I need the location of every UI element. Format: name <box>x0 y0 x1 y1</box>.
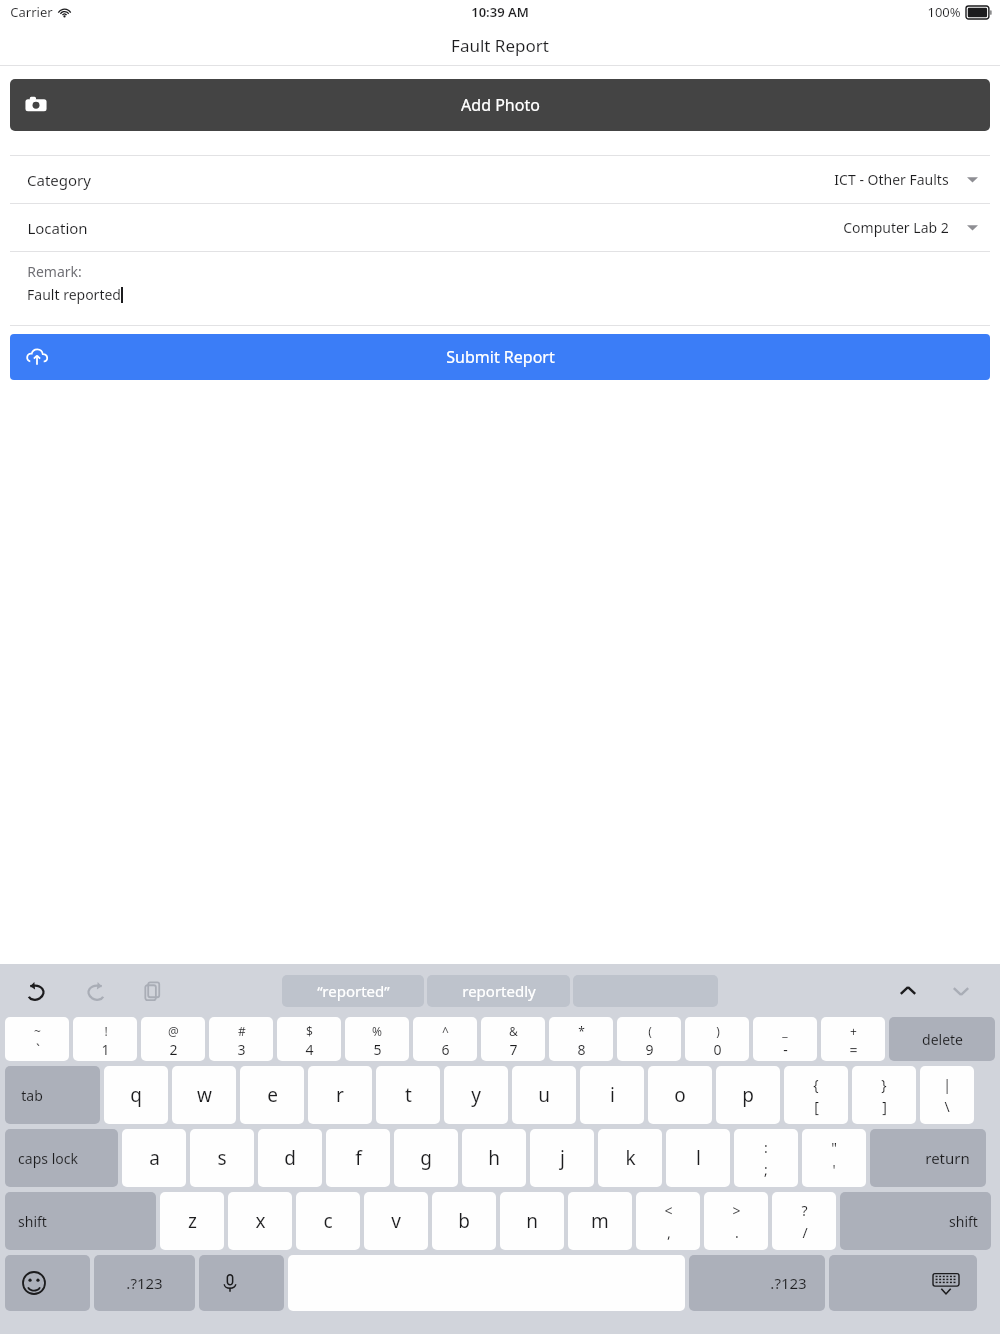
button[interactable]: delete <box>889 1017 995 1061</box>
button[interactable]: } <box>852 1066 916 1124</box>
button[interactable]: ^ <box>413 1017 477 1061</box>
button[interactable]: q <box>104 1066 168 1124</box>
staticText: 10:39 AM <box>471 3 529 21</box>
button[interactable]: .?123 <box>689 1255 825 1311</box>
staticText: 6 <box>441 1040 450 1059</box>
staticText: ? <box>801 1201 808 1220</box>
button[interactable]: m <box>568 1192 632 1250</box>
button[interactable]: Paste <box>138 976 168 1006</box>
button[interactable]: Redo <box>80 976 110 1006</box>
button[interactable]: Location <box>10 204 990 251</box>
staticText: m <box>591 1208 609 1234</box>
button[interactable]: x <box>228 1192 292 1250</box>
button[interactable]: ? <box>772 1192 836 1250</box>
button[interactable]: k <box>598 1129 662 1187</box>
button[interactable]: | <box>920 1066 974 1124</box>
button[interactable]: Submit Report <box>10 334 990 380</box>
button[interactable]: ~ <box>5 1017 69 1061</box>
staticText: Carrier <box>10 3 53 21</box>
button[interactable]: d <box>258 1129 322 1187</box>
staticText: 100% <box>927 3 961 21</box>
staticText: i <box>610 1082 615 1108</box>
button[interactable]: o <box>648 1066 712 1124</box>
button[interactable]: p <box>716 1066 780 1124</box>
staticText: Computer Lab 2 <box>843 218 949 237</box>
button[interactable]: ! <box>73 1017 137 1061</box>
staticText: ; <box>764 1160 768 1179</box>
staticText: g <box>420 1145 432 1171</box>
staticText: 5 <box>373 1040 382 1059</box>
button[interactable]: > <box>704 1192 768 1250</box>
button[interactable]: reportedly <box>427 975 570 1007</box>
button[interactable]: { <box>784 1066 848 1124</box>
button[interactable]: Undo <box>22 976 52 1006</box>
button[interactable]: $ <box>277 1017 341 1061</box>
button[interactable]: ( <box>617 1017 681 1061</box>
staticText: \ <box>944 1097 950 1116</box>
button[interactable]: i <box>580 1066 644 1124</box>
staticText: z <box>188 1208 197 1234</box>
button[interactable]: h <box>462 1129 526 1187</box>
button[interactable]: n <box>500 1192 564 1250</box>
button[interactable]: # <box>209 1017 273 1061</box>
button[interactable]: % <box>345 1017 409 1061</box>
button[interactable]: : <box>734 1129 798 1187</box>
button[interactable]: return <box>870 1129 986 1187</box>
button[interactable]: caps lock <box>5 1129 118 1187</box>
button[interactable]: a <box>122 1129 186 1187</box>
button[interactable]: t <box>376 1066 440 1124</box>
staticText: x <box>255 1208 266 1234</box>
staticText: c <box>323 1208 333 1234</box>
button[interactable]: Category <box>10 156 990 203</box>
button[interactable]: Previous field <box>893 976 923 1006</box>
button[interactable]: r <box>308 1066 372 1124</box>
button[interactable]: + <box>821 1017 885 1061</box>
button[interactable]: shift <box>5 1192 156 1250</box>
button[interactable]: ) <box>685 1017 749 1061</box>
button[interactable]: y <box>444 1066 508 1124</box>
button[interactable]: tab <box>5 1066 100 1124</box>
staticText: n <box>526 1208 538 1234</box>
button[interactable]: b <box>432 1192 496 1250</box>
button[interactable]: f <box>326 1129 390 1187</box>
button[interactable]: Dictation <box>199 1255 284 1311</box>
staticText: .?123 <box>126 1273 163 1293</box>
button[interactable]: g <box>394 1129 458 1187</box>
staticText: w <box>197 1082 212 1108</box>
button[interactable]: _ <box>753 1017 817 1061</box>
button[interactable]: l <box>666 1129 730 1187</box>
staticText: ( <box>648 1023 652 1039</box>
button[interactable]: Hide keyboard <box>829 1255 977 1311</box>
button[interactable]: & <box>481 1017 545 1061</box>
button[interactable]: s <box>190 1129 254 1187</box>
button[interactable]: Emoji <box>5 1255 90 1311</box>
button[interactable]: < <box>636 1192 700 1250</box>
button[interactable]: j <box>530 1129 594 1187</box>
button[interactable]: .?123 <box>94 1255 195 1311</box>
staticText: reportedly <box>462 981 536 1001</box>
button[interactable]: Remark: <box>10 252 990 325</box>
button[interactable]: c <box>296 1192 360 1250</box>
staticText: ICT - Other Faults <box>834 170 949 189</box>
button[interactable]: " <box>802 1129 866 1187</box>
staticText: ) <box>716 1023 720 1039</box>
staticText: f <box>355 1145 362 1171</box>
staticText: k <box>625 1145 636 1171</box>
button[interactable]: e <box>240 1066 304 1124</box>
button[interactable]: * <box>549 1017 613 1061</box>
button[interactable]: w <box>172 1066 236 1124</box>
button[interactable]: @ <box>141 1017 205 1061</box>
button[interactable]: v <box>364 1192 428 1250</box>
button[interactable]: shift <box>840 1192 991 1250</box>
button[interactable]: z <box>160 1192 224 1250</box>
button[interactable]: u <box>512 1066 576 1124</box>
staticText: q <box>130 1082 142 1108</box>
staticText: * <box>578 1023 585 1039</box>
button[interactable]: Add Photo <box>10 79 990 131</box>
staticText: .?123 <box>770 1273 807 1293</box>
staticText: [ <box>814 1097 819 1116</box>
button[interactable]: Next field <box>946 976 976 1006</box>
button[interactable]: “reported” <box>282 975 424 1007</box>
